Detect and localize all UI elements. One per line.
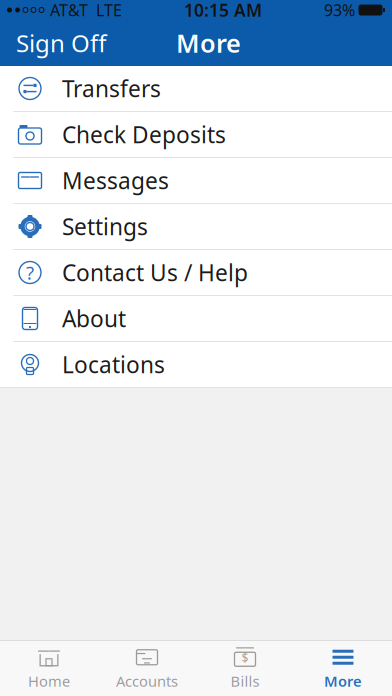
button[interactable]: Messages (0, 158, 392, 204)
staticText: 10:15 AM (184, 0, 262, 21)
button[interactable]: Locations (0, 342, 392, 388)
button[interactable]: Accounts (98, 644, 196, 693)
button[interactable]: ? (0, 250, 392, 296)
staticText: $ (241, 650, 248, 666)
button[interactable]: Sign Off (0, 21, 117, 65)
button[interactable]: Settings (0, 204, 392, 250)
staticText: Settings (62, 211, 148, 241)
staticText: About (62, 303, 126, 333)
staticText: Transfers (62, 73, 161, 103)
button[interactable]: $ (196, 644, 294, 693)
staticText: Sign Off (16, 27, 107, 59)
staticText: Messages (62, 165, 169, 195)
button[interactable]: Check Deposits (0, 112, 392, 158)
staticText: LTE (96, 0, 122, 21)
staticText: More (176, 26, 241, 60)
staticText: Contact Us / Help (62, 257, 248, 287)
staticText: Check Deposits (62, 119, 226, 149)
button[interactable]: Transfers (0, 66, 392, 112)
staticText: Accounts (116, 671, 178, 691)
button[interactable]: Home (0, 644, 98, 693)
staticText: Home (28, 671, 70, 691)
staticText: 93% (324, 0, 355, 21)
staticText: More (324, 671, 362, 691)
button[interactable]: More (294, 644, 392, 693)
staticText: Bills (230, 671, 259, 691)
staticText: Locations (62, 349, 165, 379)
button[interactable]: About (0, 296, 392, 342)
staticText: AT&T (50, 0, 88, 21)
staticText: ? (26, 260, 34, 285)
